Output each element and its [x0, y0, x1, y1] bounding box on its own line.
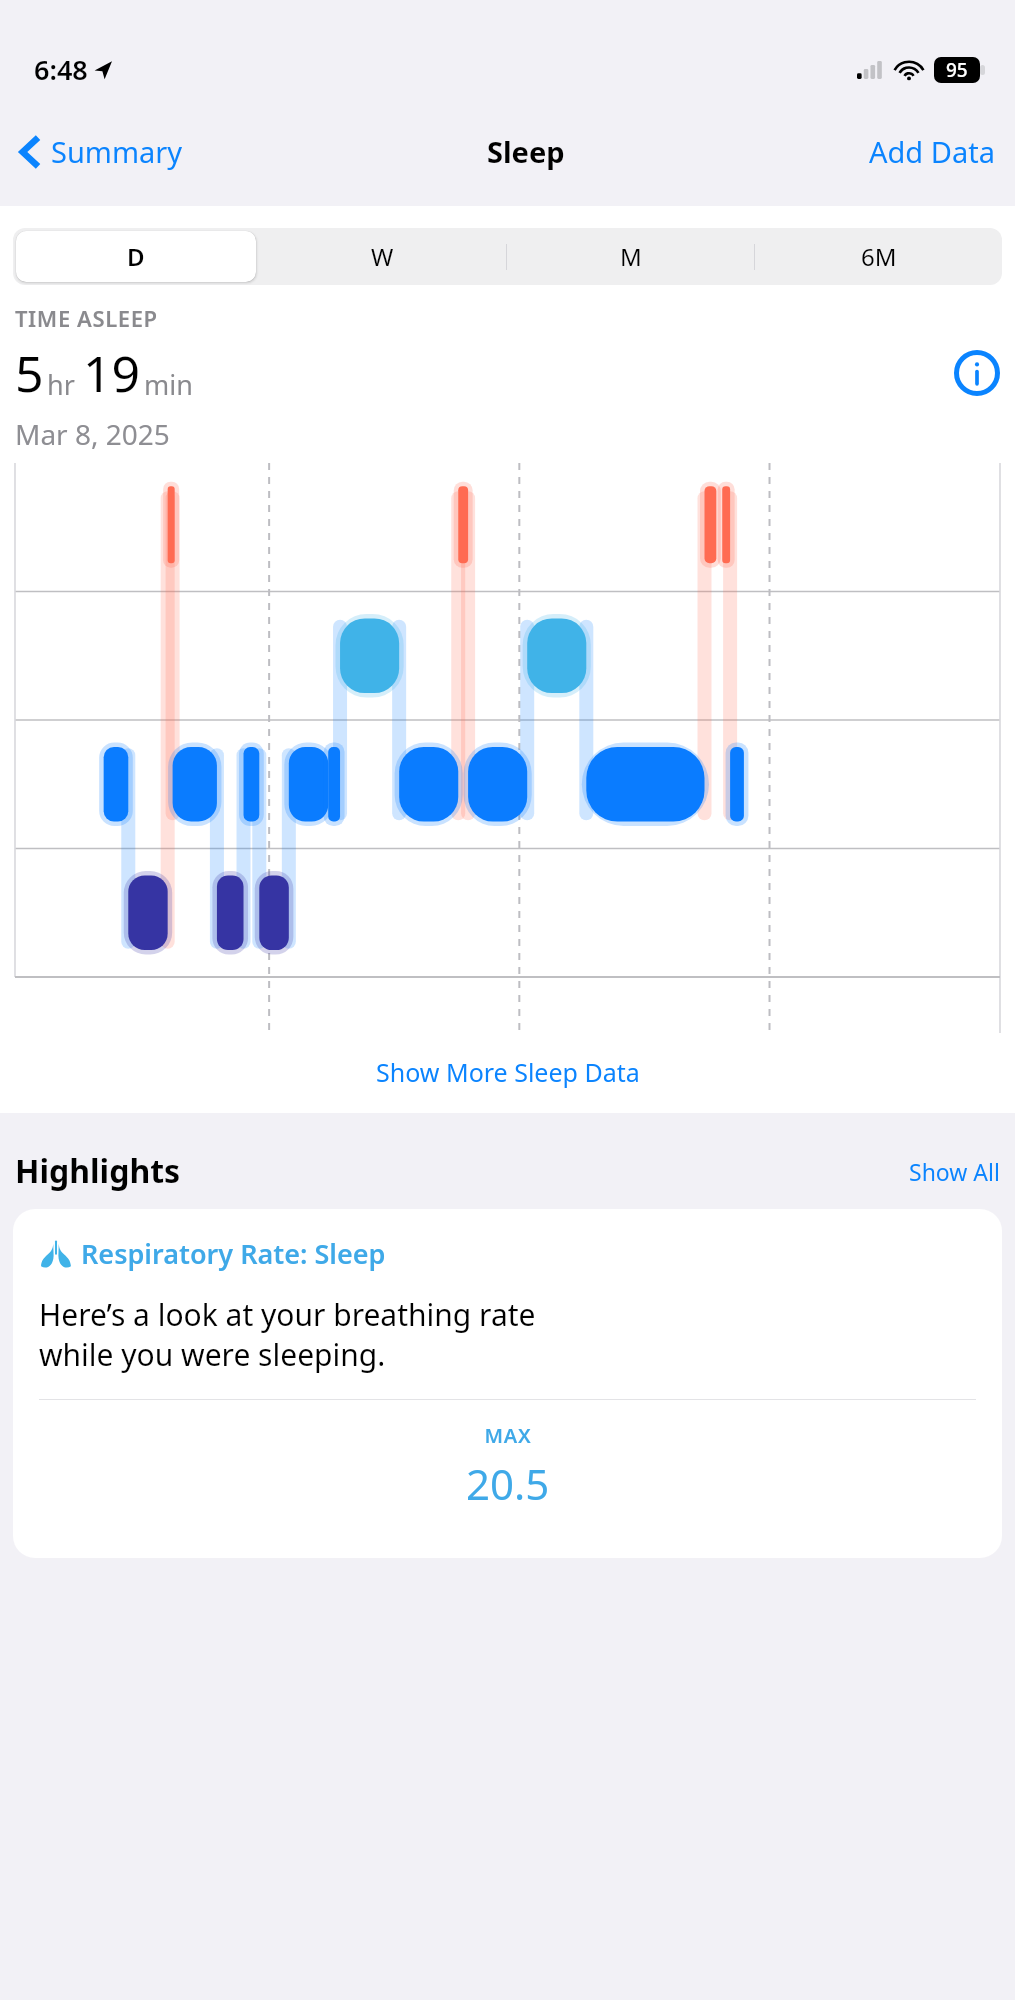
staticText: Summary [51, 132, 183, 171]
button[interactable]: 6M [758, 231, 999, 282]
button[interactable]: Summary [20, 126, 183, 177]
staticText: Here’s a look at your breathing rate whi… [39, 1294, 536, 1375]
staticText: Show All [909, 1156, 1000, 1187]
staticText: Highlights [15, 1149, 181, 1193]
staticText: D [127, 240, 145, 273]
staticText: Respiratory Rate: Sleep [81, 1235, 386, 1272]
staticText: 5 [15, 339, 44, 407]
staticText: 6M [861, 240, 897, 273]
staticText: 20.5 [466, 1455, 550, 1512]
staticText: TIME ASLEEP [15, 303, 158, 333]
button[interactable]: D [16, 231, 256, 282]
staticText: M [620, 240, 642, 273]
staticText: Show More Sleep Data [376, 1055, 640, 1089]
staticText: W [371, 240, 394, 273]
staticText: 19 [83, 339, 141, 407]
staticText: Mar 8, 2025 [15, 415, 170, 453]
button[interactable]: Add Data [869, 126, 995, 177]
button[interactable]: Respiratory Rate: Sleep [13, 1209, 1002, 1558]
staticText: min [144, 366, 193, 403]
staticText: hr [47, 366, 75, 403]
staticText: Add Data [869, 132, 995, 171]
button[interactable]: Information [954, 350, 1000, 396]
staticText: MAX [484, 1422, 532, 1449]
button[interactable]: Show More Sleep Data [0, 1055, 1015, 1089]
staticText: 6:48 [34, 51, 88, 88]
staticText: Sleep [487, 132, 565, 171]
staticText: 95 [946, 57, 968, 83]
button[interactable]: W [262, 231, 503, 282]
button[interactable]: Show All [909, 1156, 1000, 1187]
button[interactable]: M [510, 231, 751, 282]
